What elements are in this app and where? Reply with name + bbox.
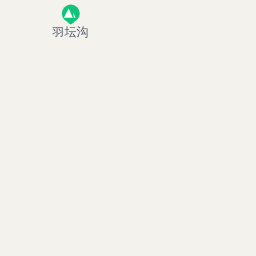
button[interactable]: 羽坛沟 map marker: [52, 3, 89, 39]
staticText: 羽坛沟: [52, 24, 89, 39]
